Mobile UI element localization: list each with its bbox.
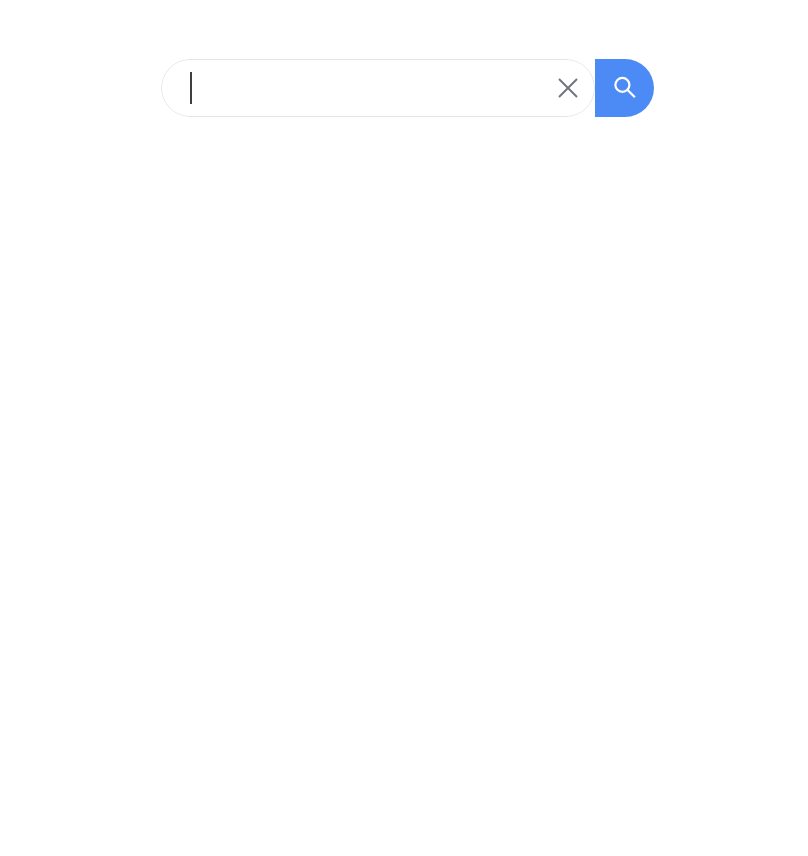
button[interactable]: Clear search — [161, 59, 595, 117]
button[interactable]: Clear search — [544, 64, 592, 112]
button[interactable]: Search — [595, 59, 654, 117]
